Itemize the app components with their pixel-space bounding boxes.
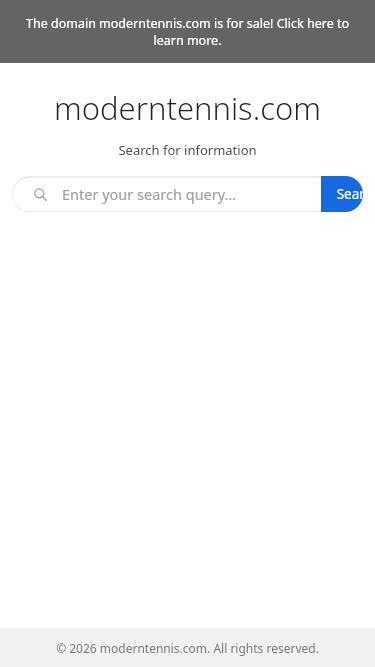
staticText: Search for information: [0, 141, 375, 159]
staticText: Enter your search query...: [62, 184, 363, 204]
button[interactable]: The domain moderntennis.com is for sale!…: [0, 0, 375, 63]
staticText: The domain moderntennis.com is for sale!…: [16, 15, 359, 49]
staticText: Search: [321, 185, 363, 203]
button[interactable]: Search: [321, 176, 363, 212]
staticText: © 2026 moderntennis.com. All rights rese…: [0, 640, 375, 656]
other: Search: [32, 186, 48, 202]
staticText: moderntennis.com: [0, 87, 375, 129]
